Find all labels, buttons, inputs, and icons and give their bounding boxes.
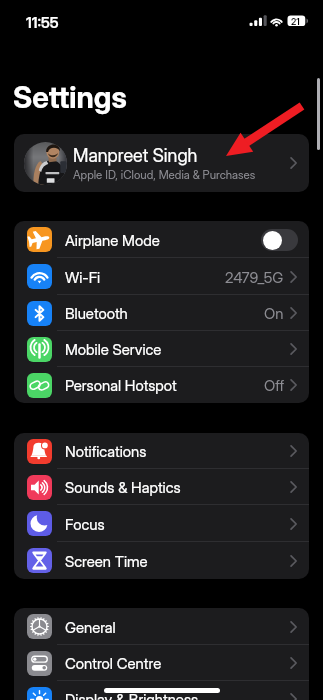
- staticText: On: [264, 304, 284, 322]
- button[interactable]: Mobile Service: [14, 331, 309, 367]
- staticText: Bluetooth: [65, 304, 128, 322]
- button[interactable]: Focus: [14, 505, 309, 542]
- button[interactable]: Control Centre: [14, 645, 309, 681]
- staticText: Focus: [65, 515, 105, 533]
- staticText: 11:55: [26, 13, 59, 31]
- staticText: Display & Brightness: [65, 690, 199, 700]
- staticText: Apple ID, iCloud, Media & Purchases: [73, 168, 256, 182]
- staticText: Wi-Fi: [65, 268, 101, 286]
- button[interactable]: Display & Brightness: [14, 681, 309, 700]
- staticText: Screen Time: [65, 552, 148, 570]
- button[interactable]: Bluetooth: [14, 295, 309, 331]
- staticText: General: [65, 618, 116, 636]
- button[interactable]: Wi-Fi: [14, 258, 309, 295]
- staticText: Personal Hotspot: [65, 376, 177, 394]
- staticText: Off: [264, 376, 284, 394]
- staticText: Mobile Service: [65, 340, 162, 358]
- staticText: Sounds & Haptics: [65, 478, 181, 496]
- staticText: 21: [291, 16, 300, 27]
- button[interactable]: General: [14, 608, 309, 645]
- button[interactable]: Manpreet Singh: [14, 134, 309, 192]
- button[interactable]: Personal Hotspot: [14, 367, 309, 403]
- button[interactable]: Airplane Mode: [14, 221, 309, 258]
- staticText: Settings: [13, 79, 127, 115]
- button[interactable]: Notifications: [14, 433, 309, 469]
- button[interactable]: Sounds & Haptics: [14, 469, 309, 505]
- button[interactable]: Screen Time: [14, 542, 309, 579]
- staticText: Notifications: [65, 442, 147, 460]
- staticText: Airplane Mode: [65, 231, 160, 249]
- staticText: 2479_5G: [225, 268, 284, 286]
- staticText: Manpreet Singh: [73, 145, 198, 167]
- staticText: Control Centre: [65, 654, 162, 672]
